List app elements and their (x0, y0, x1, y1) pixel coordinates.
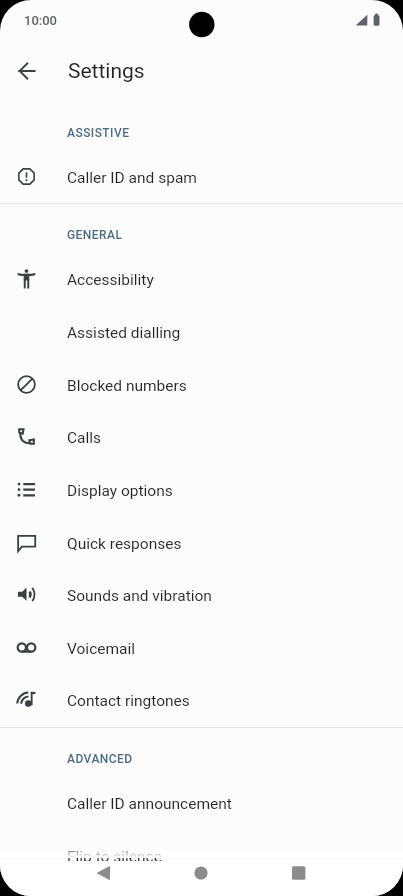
staticText: ADVANCED (67, 752, 133, 766)
button[interactable]: Flip to silence (0, 829, 403, 882)
staticText: Settings (68, 59, 145, 84)
button[interactable]: Navigate up (3, 47, 51, 95)
button[interactable]: Caller ID announcement (0, 776, 403, 829)
button[interactable]: Caller ID and spam (0, 150, 403, 203)
staticText: Voicemail (67, 640, 136, 658)
button[interactable]: Sounds and vibration (0, 568, 403, 621)
staticText: Caller ID announcement (67, 795, 232, 813)
button[interactable]: Display options (0, 463, 403, 516)
staticText: Assisted dialling (67, 324, 181, 342)
staticText: Display options (67, 482, 173, 500)
button[interactable]: Accessibility (0, 252, 403, 305)
button[interactable]: Blocked numbers (0, 358, 403, 411)
button[interactable]: Contact ringtones (0, 673, 403, 726)
staticText: GENERAL (67, 228, 123, 242)
staticText: Calls (67, 429, 102, 447)
staticText: ASSISTIVE (67, 126, 130, 140)
button[interactable]: Calls (0, 410, 403, 463)
staticText: Contact ringtones (67, 692, 190, 710)
staticText: Accessibility (67, 271, 154, 289)
staticText: Caller ID and spam (67, 169, 197, 187)
button[interactable]: Quick responses (0, 516, 403, 569)
staticText: Blocked numbers (67, 377, 187, 395)
staticText: Quick responses (67, 535, 182, 553)
button[interactable]: Assisted dialling (0, 305, 403, 358)
staticText: Flip to silence (67, 848, 162, 866)
button[interactable]: Voicemail (0, 621, 403, 674)
staticText: Sounds and vibration (67, 587, 212, 605)
staticText: 10:00 (24, 13, 58, 28)
